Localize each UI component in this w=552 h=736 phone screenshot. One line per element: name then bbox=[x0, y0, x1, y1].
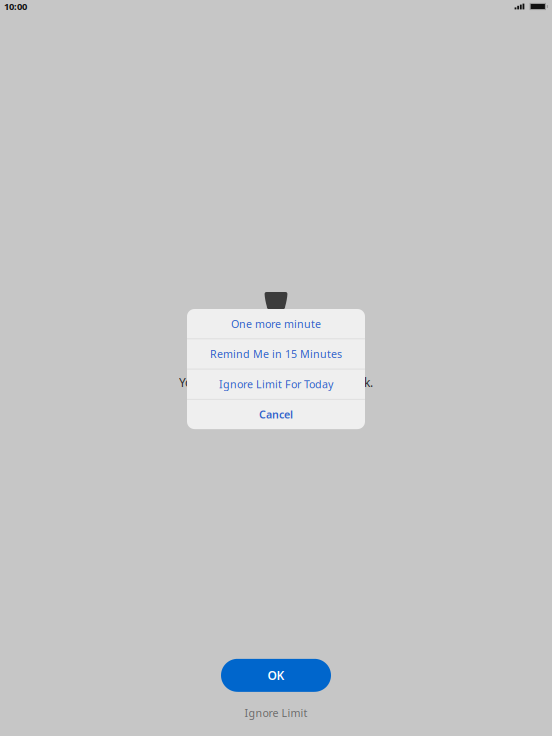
button[interactable]: OK bbox=[221, 659, 331, 692]
staticText: Ignore Limit bbox=[244, 706, 307, 720]
staticText: Cancel bbox=[259, 407, 293, 421]
staticText: Remind Me in 15 Minutes bbox=[210, 347, 342, 361]
staticText: 10:00 bbox=[4, 0, 27, 13]
staticText: One more minute bbox=[231, 317, 321, 331]
staticText: You've reached your limit for Slack. bbox=[179, 374, 373, 390]
staticText: OK bbox=[267, 667, 284, 683]
button[interactable]: Remind Me in 15 Minutes bbox=[187, 339, 365, 369]
staticText: Ignore Limit For Today bbox=[219, 377, 333, 391]
button[interactable]: One more minute bbox=[187, 309, 365, 338]
button[interactable]: Cancel bbox=[187, 400, 365, 429]
button[interactable]: Ignore Limit bbox=[244, 706, 307, 720]
button[interactable]: Ignore Limit For Today bbox=[187, 369, 365, 399]
